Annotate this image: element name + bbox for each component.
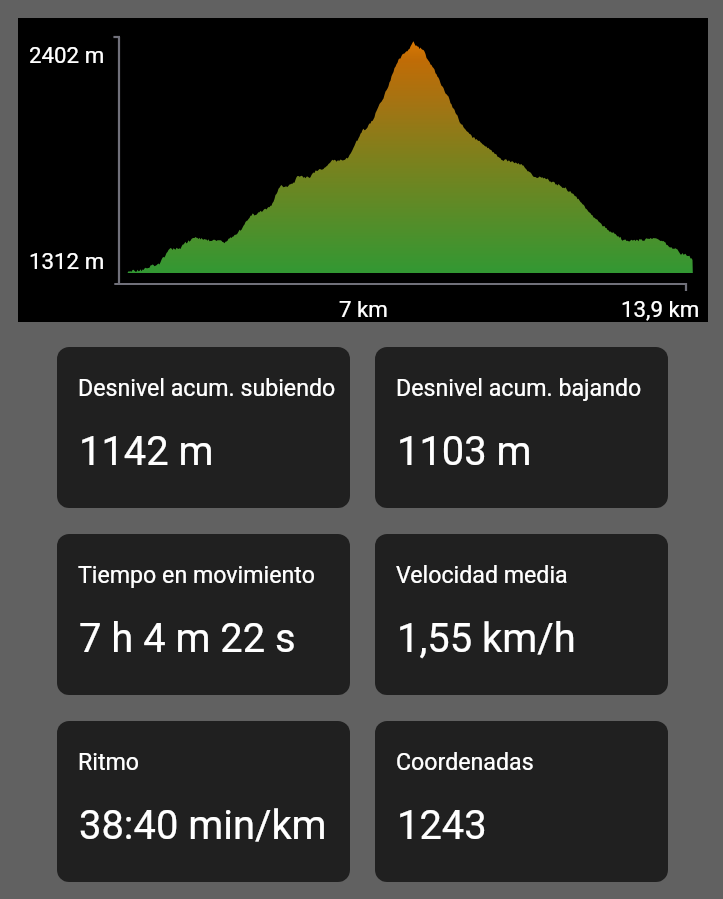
button[interactable]: Tiempo en movimiento bbox=[57, 534, 350, 695]
staticText: 38:40 min/km bbox=[79, 802, 327, 849]
button[interactable]: Perfil de elevacion de la ruta bbox=[18, 18, 708, 322]
staticText: Ritmo bbox=[78, 748, 140, 775]
staticText: 1142 m bbox=[79, 428, 214, 475]
staticText: Velocidad media bbox=[396, 561, 568, 588]
staticText: 1312 m bbox=[29, 248, 105, 274]
staticText: Coordenadas bbox=[396, 748, 534, 775]
staticText: Tiempo en movimiento bbox=[78, 561, 315, 588]
button[interactable]: Velocidad media bbox=[375, 534, 668, 695]
staticText: 1243 bbox=[397, 802, 487, 849]
staticText: 7 km bbox=[339, 296, 388, 322]
button[interactable]: Desnivel acum. subiendo bbox=[57, 347, 350, 508]
button[interactable]: Desnivel acum. bajando bbox=[375, 347, 668, 508]
staticText: 2402 m bbox=[29, 42, 105, 68]
staticText: 7 h 4 m 22 s bbox=[79, 615, 296, 662]
staticText: 1,55 km/h bbox=[397, 615, 576, 662]
button[interactable]: Coordenadas bbox=[375, 721, 668, 882]
staticText: 1103 m bbox=[397, 428, 532, 475]
staticText: Desnivel acum. subiendo bbox=[78, 374, 336, 401]
staticText: Desnivel acum. bajando bbox=[396, 374, 642, 401]
button[interactable]: Ritmo bbox=[57, 721, 350, 882]
staticText: 13,9 km bbox=[621, 296, 700, 322]
